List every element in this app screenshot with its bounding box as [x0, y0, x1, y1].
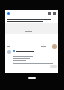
button[interactable]: Account [7, 12, 10, 15]
button[interactable] [50, 65, 57, 68]
